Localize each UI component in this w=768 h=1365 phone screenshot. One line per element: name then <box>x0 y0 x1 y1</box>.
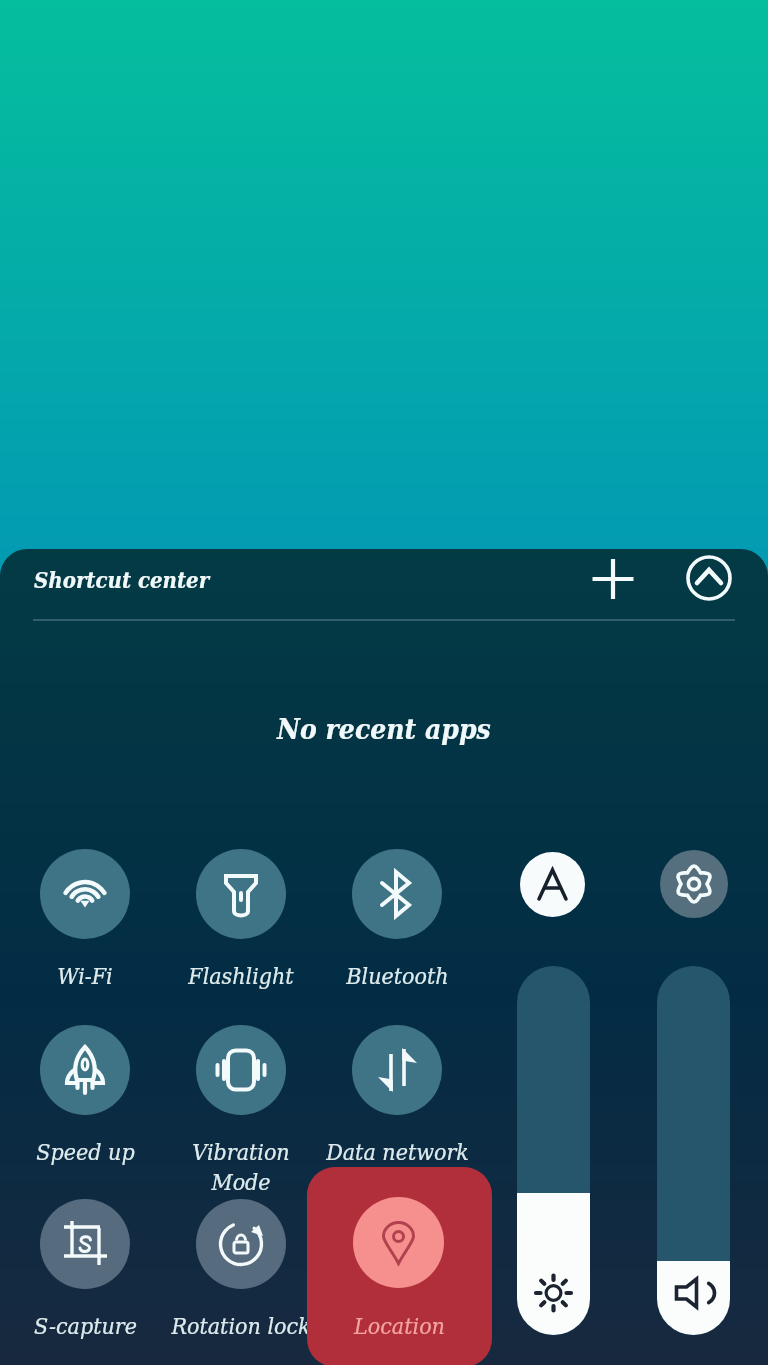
staticText: Flashlight <box>188 963 294 990</box>
button[interactable]: Data network <box>319 1020 475 1175</box>
button[interactable]: Add shortcut <box>586 552 640 606</box>
button[interactable]: Wi-Fi <box>7 844 163 999</box>
button[interactable]: Settings <box>660 850 728 918</box>
button[interactable]: Collapse panel <box>682 551 736 605</box>
button[interactable]: Brightness <box>517 966 590 1335</box>
staticText: Speed up <box>36 1139 135 1166</box>
staticText: Location <box>354 1313 445 1340</box>
staticText: Wi-Fi <box>57 963 113 990</box>
staticText: Bluetooth <box>346 963 449 990</box>
staticText: Shortcut center <box>34 567 210 593</box>
button[interactable]: Bluetooth <box>319 844 475 999</box>
button[interactable]: Auto brightness <box>520 852 585 917</box>
button[interactable]: Vibration Mode <box>163 1020 319 1175</box>
button[interactable]: S-capture <box>7 1194 163 1349</box>
staticText: S-capture <box>34 1313 137 1340</box>
button[interactable]: Speed up <box>7 1020 163 1175</box>
staticText: Data network <box>326 1139 469 1166</box>
staticText: No recent apps <box>277 713 491 746</box>
button[interactable]: Volume <box>657 966 730 1335</box>
button[interactable]: Rotation lock <box>163 1194 319 1349</box>
button[interactable]: Location <box>307 1167 492 1365</box>
staticText: Rotation lock <box>171 1313 311 1340</box>
staticText: Vibration Mode <box>192 1139 290 1195</box>
button[interactable]: Flashlight <box>163 844 319 999</box>
